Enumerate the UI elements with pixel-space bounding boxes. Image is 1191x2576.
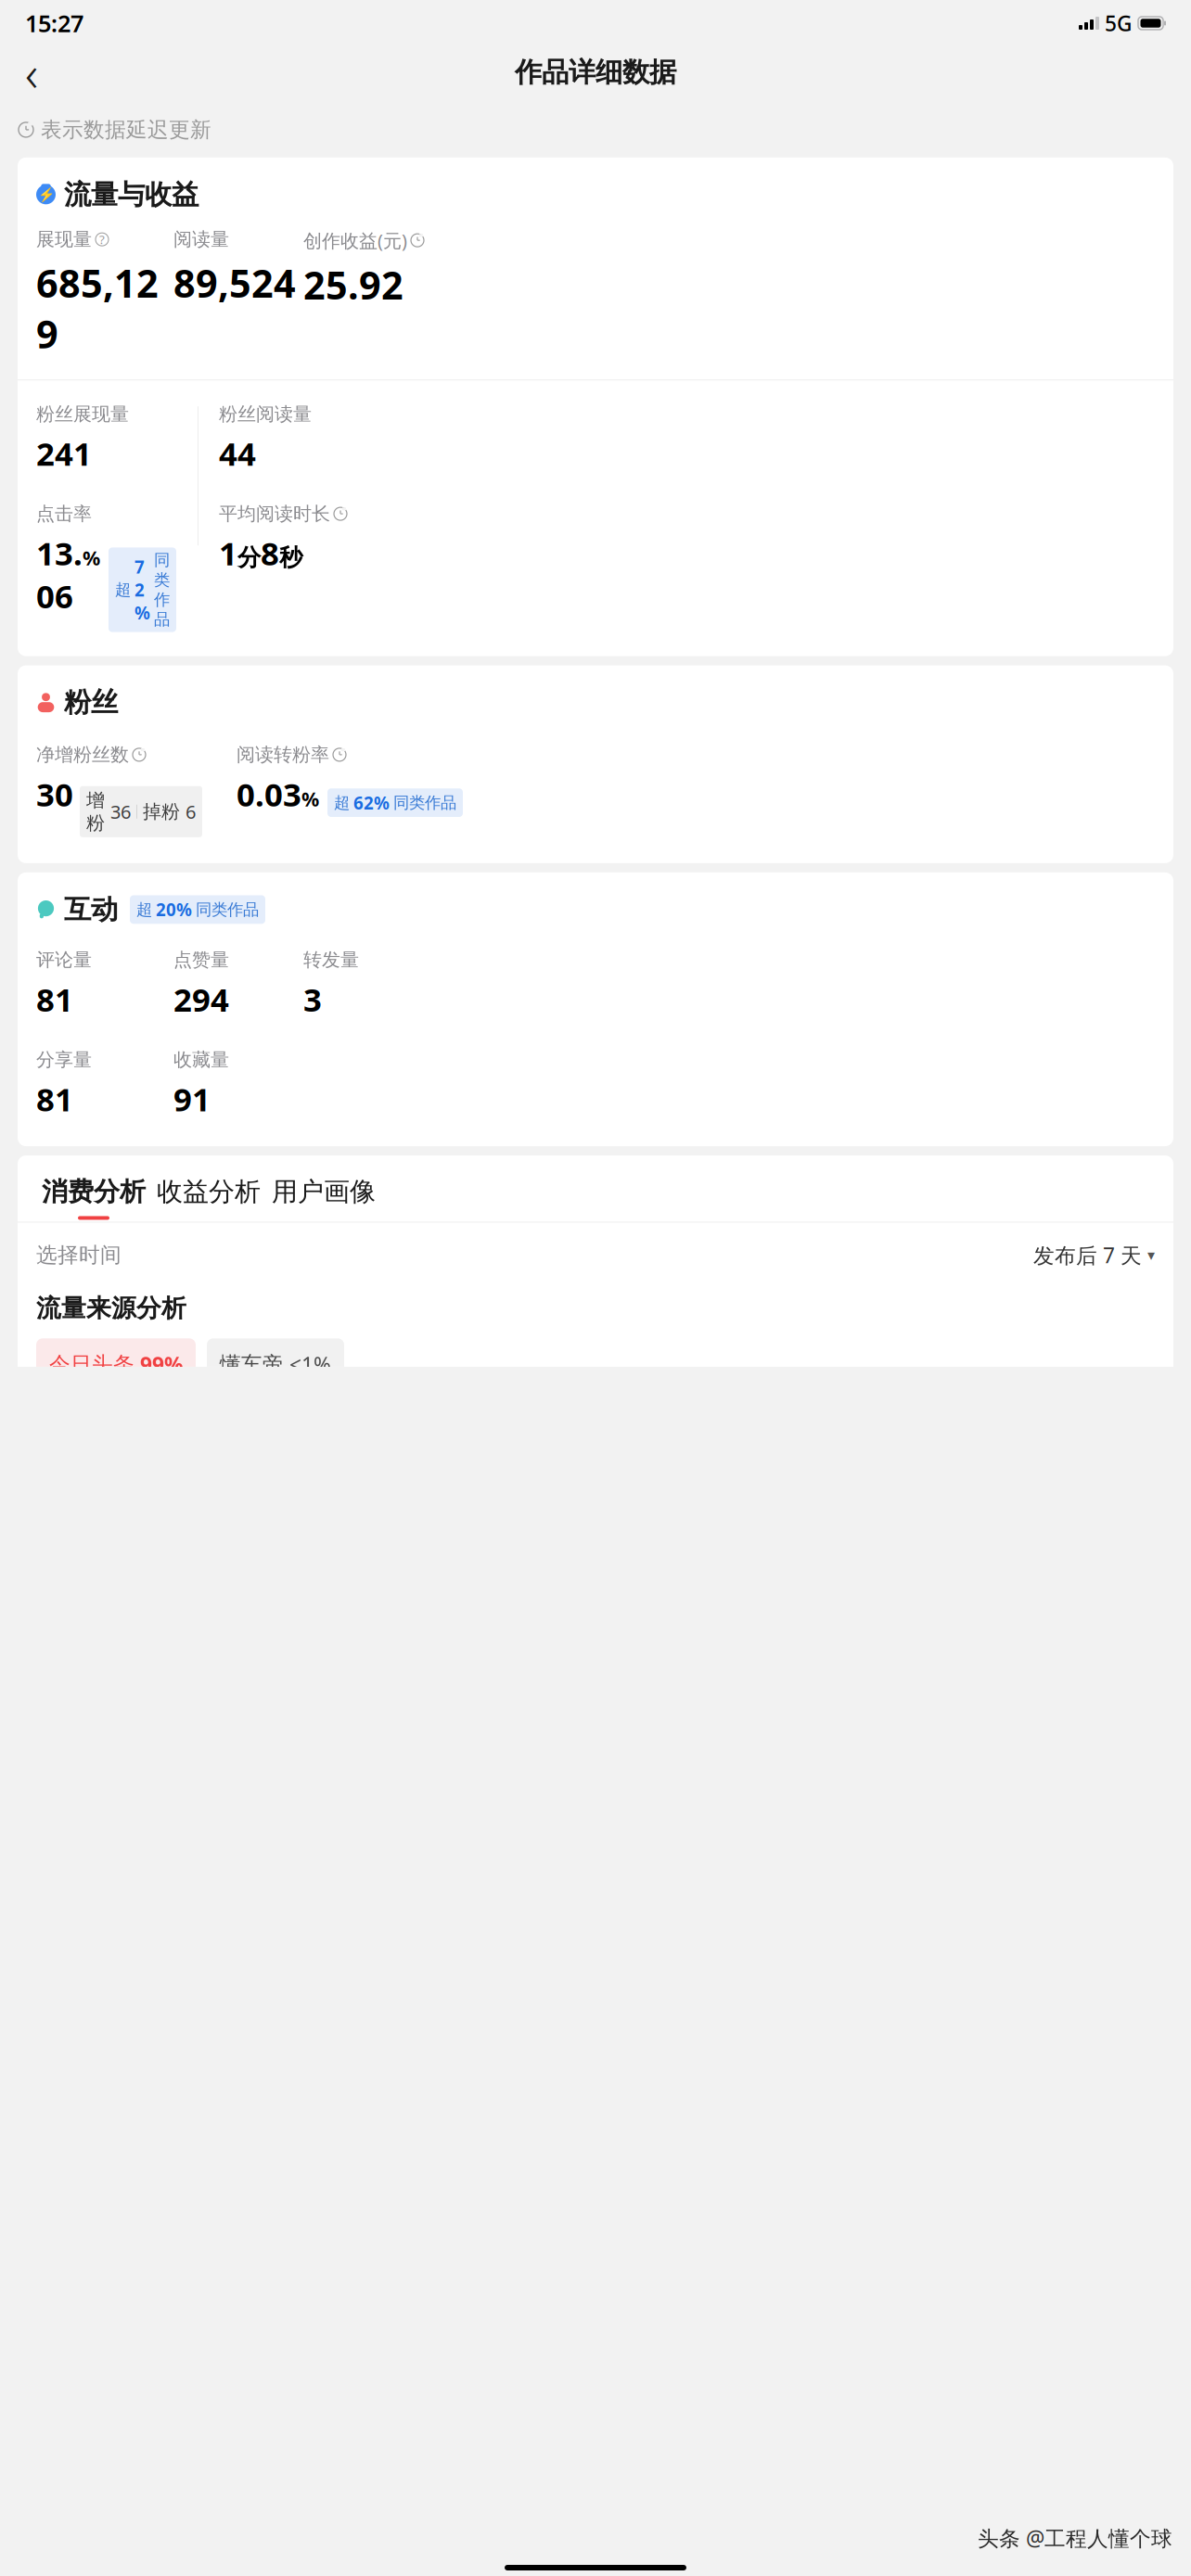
staticText: 评论量: [36, 949, 92, 971]
staticText: 30: [36, 773, 73, 815]
staticText: 99%: [140, 1350, 183, 1378]
staticText: 粉丝展现量: [36, 403, 129, 425]
staticText: 25.92: [303, 259, 403, 310]
staticText: 今日头条: [49, 1352, 134, 1377]
staticText: 81: [36, 978, 73, 1020]
button[interactable]: 收益分析: [157, 1155, 261, 1220]
button[interactable]: 选择时间: [18, 1223, 1173, 1288]
staticText: 超: [115, 580, 131, 600]
staticText: ‹: [25, 40, 38, 105]
staticText: 粉丝阅读量: [219, 403, 312, 425]
staticText: 超: [334, 793, 350, 813]
staticText: 阅读转粉率: [237, 743, 329, 766]
staticText: 流量来源分析: [36, 1293, 186, 1324]
staticText: 6: [186, 799, 196, 824]
staticText: 44: [219, 432, 256, 475]
staticText: 20%: [156, 898, 192, 921]
staticText: 8: [261, 532, 279, 574]
staticText: 同类作品: [196, 900, 259, 919]
staticText: ▾: [1147, 1247, 1155, 1264]
staticText: 超: [136, 900, 152, 919]
staticText: 转发量: [303, 949, 359, 971]
staticText: %: [301, 786, 319, 812]
staticText: 收益分析: [157, 1176, 261, 1208]
staticText: 互动: [64, 893, 118, 926]
staticText: 收藏量: [173, 1048, 229, 1071]
staticText: 13.06: [36, 532, 83, 617]
staticText: 表示数据延迟更新: [41, 117, 211, 143]
staticText: 81: [36, 1078, 73, 1120]
staticText: 增粉: [86, 789, 105, 834]
staticText: 作品详细数据: [515, 56, 676, 89]
staticText: 241: [36, 432, 92, 475]
staticText: ?: [99, 231, 105, 248]
staticText: 5G: [1105, 9, 1132, 37]
staticText: 72%: [134, 555, 150, 624]
staticText: 流量与收益: [64, 178, 198, 211]
staticText: 平均阅读时长: [219, 502, 330, 525]
staticText: 36: [110, 799, 131, 824]
staticText: 0.03: [237, 773, 301, 815]
staticText: 掉粉: [143, 800, 180, 823]
button[interactable]: 用户画像: [272, 1155, 376, 1220]
staticText: 同类作品: [393, 793, 456, 813]
staticText: 发布后 7 天: [1033, 1241, 1142, 1269]
staticText: 用户画像: [272, 1176, 376, 1208]
staticText: 685,129: [36, 257, 159, 359]
staticText: 点击率: [36, 502, 92, 525]
staticText: 分享量: [36, 1048, 92, 1071]
staticText: 同类作品: [154, 550, 170, 629]
staticText: 展现量: [36, 228, 92, 251]
staticText: 头条 @工程人懂个球: [978, 2524, 1172, 2552]
staticText: 89,524: [173, 257, 296, 308]
staticText: %: [83, 545, 100, 571]
staticText: 秒: [279, 543, 302, 572]
staticText: 294: [173, 978, 229, 1020]
staticText: 15:27: [25, 8, 83, 39]
staticText: 3: [303, 978, 322, 1020]
staticText: 净增粉丝数: [36, 743, 129, 766]
staticText: 创作收益(元): [303, 228, 407, 253]
staticText: 点赞量: [173, 949, 229, 971]
staticText: 62%: [353, 791, 390, 814]
staticText: 选择时间: [36, 1242, 122, 1268]
staticText: 分: [237, 543, 261, 572]
button[interactable]: Back: [11, 52, 52, 93]
button[interactable]: 消费分析: [42, 1155, 146, 1220]
staticText: 粉丝: [64, 686, 118, 719]
staticText: 1: [219, 532, 237, 574]
staticText: <1%: [289, 1350, 331, 1378]
staticText: 消费分析: [42, 1176, 146, 1208]
staticText: 懂车帝: [220, 1352, 284, 1377]
staticText: 91: [173, 1078, 211, 1120]
staticText: ⚡: [38, 187, 54, 202]
staticText: 阅读量: [173, 228, 229, 251]
